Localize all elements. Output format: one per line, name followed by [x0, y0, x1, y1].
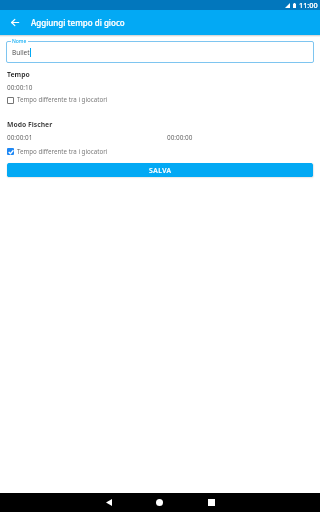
staticText: Bullet [12, 48, 30, 57]
staticText: 00:00:01 [7, 133, 33, 142]
staticText: Aggiungi tempo di gioco [31, 17, 125, 28]
button[interactable]: Recent apps [213, 493, 320, 512]
button[interactable]: Tempo differente tra i giocatori [7, 147, 320, 155]
staticText: SALVA [149, 166, 172, 175]
button[interactable]: Tempo differente tra i giocatori [7, 95, 320, 103]
button[interactable]: Back [0, 10, 25, 35]
staticText: Modo Fischer [7, 120, 53, 129]
staticText: Tempo differente tra i giocatori [17, 147, 108, 155]
button[interactable]: SALVA [7, 163, 313, 177]
staticText: 00:00:10 [7, 83, 33, 92]
staticText: Tempo [7, 70, 30, 79]
staticText: Tempo differente tra i giocatori [17, 95, 108, 103]
button[interactable]: Home [106, 493, 213, 512]
staticText: 11:00 [299, 0, 318, 10]
staticText: Nome [12, 38, 27, 45]
button[interactable]: Bullet [6, 41, 314, 63]
staticText: 00:00:00 [167, 133, 193, 142]
